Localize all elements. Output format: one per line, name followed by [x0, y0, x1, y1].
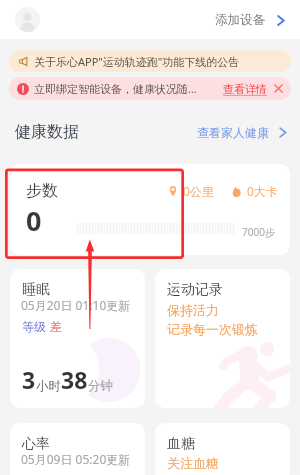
staticText: 添加设备 [215, 12, 265, 28]
staticText: 睡眠 [22, 281, 50, 299]
staticText: 差 [50, 319, 62, 334]
button[interactable]: 查看详情 [223, 82, 267, 96]
button[interactable]: Profile [15, 7, 40, 32]
staticText: 0 [26, 202, 42, 239]
staticText: 心率 [22, 435, 50, 453]
button[interactable]: 步数 [10, 164, 290, 255]
staticText: 保持活力 [167, 302, 219, 318]
button[interactable]: 心率 [10, 423, 145, 475]
staticText: 分钟 [88, 378, 113, 394]
staticText: 05月09日 05:20更新 [21, 451, 131, 467]
staticText: 等级 [22, 319, 46, 334]
button[interactable]: 睡眠 [10, 269, 145, 408]
staticText: 关于乐心APP"运动轨迹跑"功能下线的公告 [34, 54, 240, 69]
staticText: 小时 [36, 378, 61, 394]
staticText: 查看家人健康 [197, 125, 269, 140]
button[interactable]: 关于乐心APP"运动轨迹跑"功能下线的公告 [9, 50, 291, 72]
staticText: 0公里 [183, 183, 214, 199]
staticText: 7000步 [242, 225, 275, 239]
staticText: 健康数据 [15, 122, 79, 142]
button[interactable]: 运动记录 [155, 269, 290, 408]
staticText: 关注血糖 [167, 455, 219, 471]
staticText: 记录每一次锻炼 [167, 321, 258, 337]
button[interactable]: 查看家人健康 [197, 119, 289, 146]
staticText: 0大卡 [247, 183, 278, 199]
button[interactable]: 添加设备 [210, 6, 292, 34]
staticText: 3 [22, 364, 36, 395]
staticText: 血糖 [167, 435, 195, 453]
staticText: 立即绑定智能设备，健康状况随… [34, 81, 219, 96]
staticText: 运动记录 [167, 281, 223, 299]
button[interactable]: 血糖 [155, 423, 290, 475]
staticText: 05月20日 01:10更新 [21, 297, 131, 313]
button[interactable]: Close [274, 84, 283, 93]
staticText: 38 [61, 364, 88, 395]
staticText: 步数 [26, 181, 58, 201]
